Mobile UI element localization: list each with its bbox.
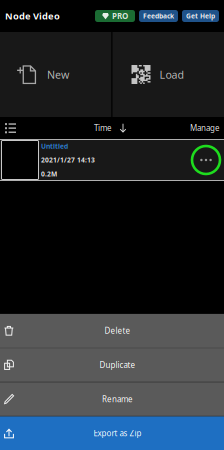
- button[interactable]: New: [0, 32, 111, 117]
- staticText: 0.2M: [41, 169, 57, 178]
- button[interactable]: Export as Zip: [0, 416, 224, 450]
- button[interactable]: List view: [1, 118, 20, 137]
- button[interactable]: Duplicate: [0, 348, 224, 382]
- staticText: New: [47, 67, 69, 82]
- staticText: Get Help: [186, 12, 215, 20]
- staticText: Rename: [102, 394, 133, 404]
- button[interactable]: PRO: [95, 10, 135, 22]
- staticText: Feedback: [143, 12, 174, 20]
- button[interactable]: Delete: [0, 314, 224, 347]
- button[interactable]: Rename: [0, 382, 224, 416]
- staticText: Export as Zip: [93, 428, 141, 438]
- button[interactable]: More options: [192, 146, 220, 174]
- staticText: 2021/1/27 14:13: [41, 156, 95, 164]
- staticText: Manage: [190, 123, 220, 133]
- staticText: Duplicate: [99, 359, 135, 370]
- button[interactable]: Manage: [187, 120, 223, 136]
- button[interactable]: Time: [91, 120, 130, 136]
- button[interactable]: Get Help: [182, 10, 219, 22]
- staticText: Node Video: [5, 10, 60, 22]
- button[interactable]: Load: [112, 32, 224, 117]
- staticText: Untitled: [41, 142, 68, 151]
- staticText: Time: [94, 123, 112, 133]
- button[interactable]: Feedback: [139, 10, 178, 22]
- staticText: Load: [159, 67, 184, 82]
- staticText: PRO: [112, 11, 128, 21]
- staticText: Delete: [104, 325, 130, 336]
